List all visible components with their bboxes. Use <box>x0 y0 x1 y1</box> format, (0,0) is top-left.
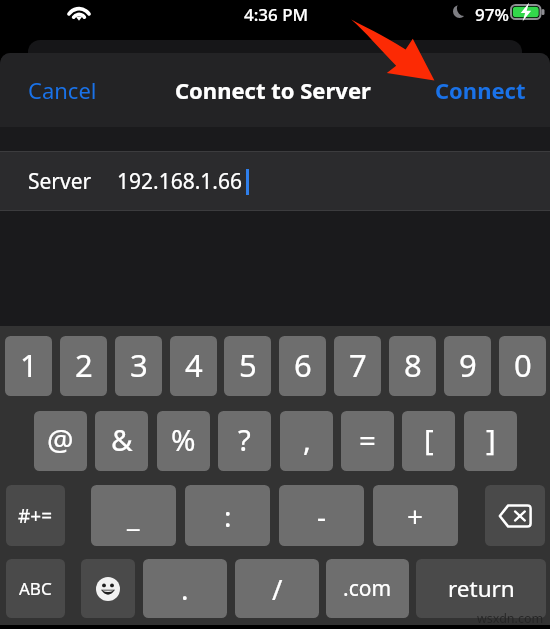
button[interactable]: Connect <box>423 65 538 115</box>
staticText: 5 <box>239 344 257 386</box>
button[interactable]: / <box>235 559 319 618</box>
button[interactable]: Backspace <box>485 485 545 546</box>
button[interactable]: ] <box>464 411 517 471</box>
staticText: wsxdn.com <box>477 610 544 625</box>
button[interactable]: return <box>416 559 546 618</box>
staticText: 97% <box>475 3 509 26</box>
staticText: 192.168.1.66 <box>117 167 242 196</box>
staticText: .com <box>343 574 392 603</box>
button[interactable]: , <box>280 411 333 471</box>
button[interactable]: @ <box>34 411 87 471</box>
staticText: + <box>407 497 424 535</box>
button[interactable]: 4 <box>170 336 217 396</box>
button[interactable]: % <box>157 411 210 471</box>
button[interactable]: Emoji keyboard <box>81 559 135 618</box>
staticText: Connect to Server <box>175 75 371 105</box>
button[interactable]: 5 <box>224 336 271 396</box>
button[interactable]: : <box>185 485 270 546</box>
button[interactable]: 0 <box>499 336 546 396</box>
staticText: ] <box>486 419 496 459</box>
staticText: : <box>224 497 232 535</box>
staticText: ? <box>238 419 251 459</box>
staticText: 2 <box>75 344 93 386</box>
staticText: Connect <box>435 75 526 105</box>
button[interactable]: = <box>341 411 394 471</box>
button[interactable]: 1 <box>5 336 52 396</box>
staticText: , <box>303 419 311 459</box>
staticText: = <box>359 419 376 459</box>
button[interactable]: 7 <box>334 336 381 396</box>
button[interactable]: - <box>279 485 364 546</box>
staticText: return <box>448 573 515 604</box>
staticText: Server <box>28 167 92 196</box>
button[interactable]: 2 <box>60 336 107 396</box>
button[interactable]: [ <box>402 411 455 471</box>
button[interactable]: 3 <box>115 336 162 396</box>
staticText: [ <box>424 419 434 459</box>
staticText: & <box>111 419 133 459</box>
button[interactable]: . <box>143 559 227 618</box>
button[interactable]: + <box>373 485 458 546</box>
button[interactable]: 6 <box>279 336 326 396</box>
button[interactable]: .com <box>326 559 409 618</box>
staticText: 7 <box>349 344 367 386</box>
staticText: 4:36 PM <box>244 3 309 26</box>
button[interactable]: #+= <box>6 485 65 546</box>
staticText: 9 <box>459 344 477 386</box>
staticText: ABC <box>19 577 52 600</box>
staticText: % <box>171 419 196 459</box>
staticText: 1 <box>20 344 38 386</box>
staticText: @ <box>47 419 74 459</box>
button[interactable]: ? <box>218 411 271 471</box>
staticText: _ <box>127 497 140 535</box>
staticText: 8 <box>404 344 422 386</box>
button[interactable]: _ <box>91 485 176 546</box>
button[interactable]: & <box>95 411 148 471</box>
staticText: Cancel <box>28 75 97 105</box>
staticText: . <box>181 570 189 608</box>
staticText: 6 <box>294 344 312 386</box>
button[interactable]: Cancel <box>16 65 109 115</box>
button[interactable]: ABC <box>6 559 65 618</box>
staticText: / <box>272 570 283 608</box>
staticText: - <box>317 497 327 535</box>
other: Wi-Fi <box>68 6 90 21</box>
other: Battery 97 percent charging <box>511 5 545 19</box>
staticText: 3 <box>130 344 148 386</box>
staticText: #+= <box>18 503 53 529</box>
staticText: 4 <box>185 344 203 386</box>
staticText: 0 <box>514 344 532 386</box>
button[interactable]: 8 <box>389 336 436 396</box>
button[interactable]: 9 <box>444 336 491 396</box>
button[interactable]: Server <box>0 152 550 211</box>
